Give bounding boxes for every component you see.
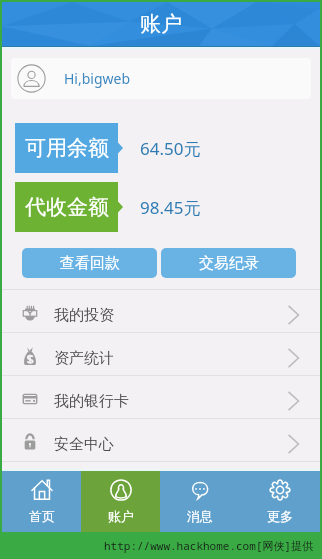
button[interactable]: Hi,bigweb	[11, 58, 311, 99]
button[interactable]: 安全中心	[2, 419, 320, 461]
button[interactable]: 我的投资	[2, 290, 320, 332]
button[interactable]: 查看回款	[22, 248, 157, 278]
button[interactable]: 交易纪录	[161, 248, 296, 278]
button[interactable]: 消息	[160, 471, 240, 532]
button[interactable]: 账户	[81, 471, 160, 532]
button[interactable]: 首页	[2, 471, 81, 532]
staticText: 更多	[267, 508, 293, 524]
staticText: 账户	[140, 11, 182, 37]
staticText: 可用余额	[25, 135, 109, 161]
staticText: 首页	[29, 508, 55, 524]
staticText: 账户	[108, 508, 134, 524]
staticText: 安全中心	[54, 435, 114, 454]
staticText: 我的银行卡	[54, 392, 129, 411]
staticText: Hi,bigweb	[64, 69, 131, 88]
staticText: 64.50元	[140, 137, 201, 160]
button[interactable]: 更多	[240, 471, 320, 532]
button[interactable]: 资产统计	[2, 333, 320, 375]
staticText: 98.45元	[140, 196, 201, 219]
staticText: 资产统计	[54, 349, 114, 368]
staticText: 我的投资	[54, 306, 114, 325]
staticText: 查看回款	[60, 254, 120, 273]
button[interactable]: 我的银行卡	[2, 376, 320, 418]
staticText: 消息	[187, 508, 213, 524]
staticText: 代收金额	[25, 194, 109, 220]
staticText: http://www.hackhome.com[网侠]提供	[104, 538, 313, 553]
staticText: 交易纪录	[199, 254, 259, 273]
